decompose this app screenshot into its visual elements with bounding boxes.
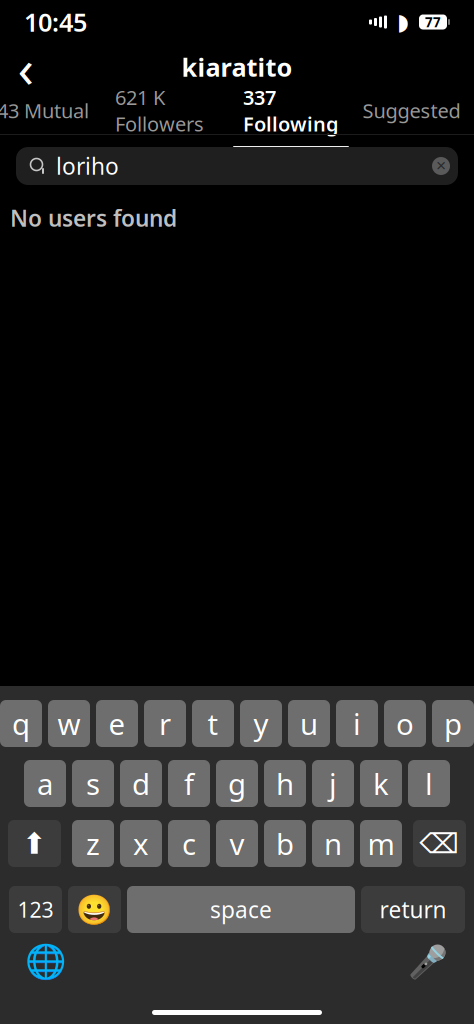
staticText: 🌐 <box>25 943 67 981</box>
staticText: g <box>228 764 246 803</box>
button[interactable]: y <box>240 700 282 747</box>
staticText: 123 <box>17 895 53 924</box>
button[interactable]: Dictation <box>404 941 452 983</box>
staticText: 77 <box>425 13 441 31</box>
button[interactable]: n <box>312 820 354 867</box>
button[interactable]: l <box>408 760 450 807</box>
staticText: f <box>184 764 194 803</box>
staticText: r <box>159 704 171 743</box>
staticText: b <box>276 824 294 863</box>
button[interactable]: k <box>360 760 402 807</box>
button[interactable]: m <box>360 820 402 867</box>
staticText: w <box>57 704 80 743</box>
staticText: kiaratito <box>181 50 292 84</box>
button[interactable]: v <box>216 820 258 867</box>
button[interactable]: p <box>432 700 474 747</box>
button[interactable]: r <box>144 700 186 747</box>
button[interactable]: q <box>0 700 42 747</box>
staticText: s <box>86 764 100 803</box>
button[interactable]: z <box>72 820 114 867</box>
staticText: o <box>396 704 414 743</box>
staticText: l <box>425 764 433 803</box>
button[interactable]: x <box>120 820 162 867</box>
staticText: No users found <box>10 203 177 233</box>
button[interactable]: Clear search text <box>424 148 458 184</box>
button[interactable]: b <box>264 820 306 867</box>
staticText: n <box>324 824 342 863</box>
button[interactable]: Suggested <box>356 90 467 134</box>
staticText: d <box>132 764 150 803</box>
button[interactable]: Delete <box>413 820 466 867</box>
staticText: Suggested <box>362 97 460 124</box>
staticText: space <box>210 894 272 924</box>
button[interactable]: Emoji keyboard <box>68 886 121 933</box>
button[interactable]: 621 K Followers <box>93 90 226 134</box>
staticText: ✕ <box>435 158 446 173</box>
staticText: ‹ <box>17 32 34 102</box>
button[interactable]: u <box>288 700 330 747</box>
staticText: 337 Following <box>243 84 339 137</box>
staticText: c <box>182 824 196 863</box>
button[interactable]: a <box>24 760 66 807</box>
button[interactable]: g <box>216 760 258 807</box>
button[interactable]: d <box>120 760 162 807</box>
staticText: t <box>207 704 218 743</box>
button[interactable]: e <box>96 700 138 747</box>
staticText: m <box>367 824 394 863</box>
staticText: e <box>108 704 125 743</box>
staticText: p <box>444 704 462 743</box>
button[interactable]: Next keyboard <box>22 941 70 983</box>
staticText: h <box>276 764 294 803</box>
button[interactable]: return <box>361 886 465 933</box>
staticText: ⬆ <box>22 827 47 860</box>
button[interactable]: 123 <box>9 886 62 933</box>
staticText: a <box>37 764 53 803</box>
staticText: return <box>379 894 446 924</box>
staticText: y <box>253 704 268 743</box>
staticText: 🎤 <box>408 944 448 980</box>
staticText: k <box>373 764 389 803</box>
staticText: i <box>353 704 361 743</box>
staticText: j <box>329 764 337 803</box>
button[interactable]: f <box>168 760 210 807</box>
staticText: u <box>300 704 318 743</box>
button[interactable]: t <box>192 700 234 747</box>
staticText: 621 K Followers <box>115 84 204 137</box>
button[interactable]: o <box>384 700 426 747</box>
staticText: loriho <box>56 151 119 181</box>
button[interactable]: j <box>312 760 354 807</box>
button[interactable]: i <box>336 700 378 747</box>
staticText: 43 Mutual <box>0 97 89 124</box>
button[interactable]: s <box>72 760 114 807</box>
staticText: ⌫ <box>419 828 459 859</box>
button[interactable]: 43 Mutual <box>0 90 93 134</box>
staticText: x <box>133 824 149 863</box>
button[interactable]: c <box>168 820 210 867</box>
staticText: q <box>12 704 30 743</box>
staticText: v <box>229 824 244 863</box>
staticText: 10:45 <box>24 5 87 39</box>
button[interactable]: 337 Following <box>226 90 356 134</box>
staticText: ◗ <box>397 9 409 35</box>
button[interactable]: space <box>127 886 355 933</box>
button[interactable]: Shift <box>8 820 61 867</box>
staticText: 😀 <box>76 893 113 926</box>
button[interactable]: w <box>48 700 90 747</box>
button[interactable]: h <box>264 760 306 807</box>
button[interactable]: Back <box>0 45 52 89</box>
staticText: z <box>86 824 100 863</box>
